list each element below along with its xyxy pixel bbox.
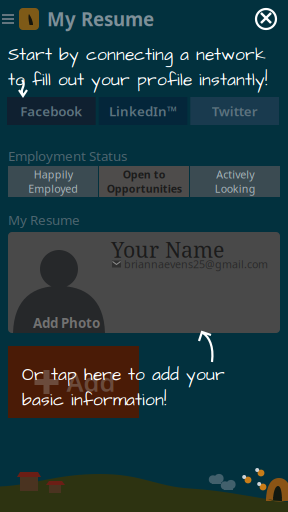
staticText: Actively Looking xyxy=(214,167,255,196)
staticText: My Resume xyxy=(47,7,154,31)
staticText: Facebook xyxy=(20,102,82,120)
staticText: briannaevens25@gmail.com xyxy=(124,257,268,271)
button[interactable]: Add xyxy=(8,346,139,418)
staticText: Start by connecting a network xyxy=(8,43,266,67)
staticText: basic information! xyxy=(22,388,166,412)
button[interactable]: Facebook xyxy=(7,97,96,125)
staticText: to fill out your profile instantly! xyxy=(8,68,267,92)
staticText: Open to Opportunities xyxy=(106,167,181,196)
button[interactable]: Open to Opportunities xyxy=(99,166,189,197)
staticText: Add Photo xyxy=(33,314,100,332)
button[interactable]: LinkedIn™ xyxy=(99,97,187,125)
button[interactable]: Happily Employed xyxy=(8,166,98,197)
staticText: LinkedIn™ xyxy=(109,102,177,120)
staticText: Happily Employed xyxy=(28,167,78,196)
staticText: My Resume xyxy=(8,211,80,229)
button[interactable]: Twitter xyxy=(190,97,279,125)
button[interactable]: Actively Looking xyxy=(190,166,280,197)
staticText: Your Name xyxy=(111,235,224,264)
button[interactable]: Add Photo xyxy=(8,232,280,333)
staticText: Employment Status xyxy=(8,147,127,165)
staticText: Or tap here to add your xyxy=(22,363,225,387)
button[interactable]: Close xyxy=(248,0,284,38)
button[interactable]: Menu xyxy=(2,0,15,38)
staticText: Twitter xyxy=(212,102,258,120)
staticText: Add xyxy=(66,365,115,399)
